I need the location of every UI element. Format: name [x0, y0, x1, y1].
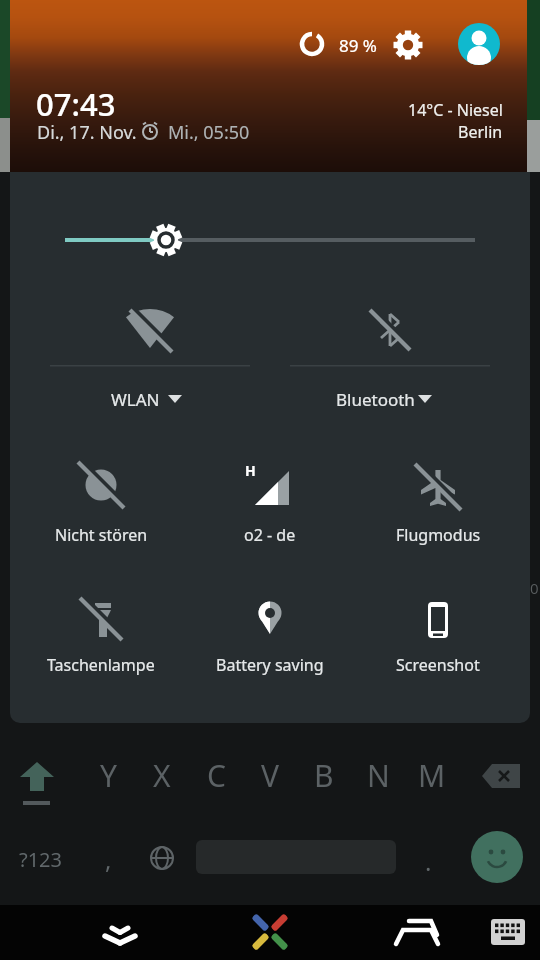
staticText: o2 - de	[244, 524, 296, 546]
button[interactable]	[200, 572, 350, 692]
button[interactable]: .	[416, 844, 440, 878]
button[interactable]	[280, 292, 500, 422]
button[interactable]	[14, 758, 62, 810]
button[interactable]	[457, 22, 501, 66]
staticText: Bluetooth	[336, 388, 415, 411]
staticText: X	[153, 755, 171, 796]
staticText: Screenshot	[396, 654, 480, 676]
staticText: Mi., 05:50	[168, 120, 250, 144]
button[interactable]	[368, 442, 518, 562]
button[interactable]: B	[302, 753, 346, 797]
button[interactable]: X	[140, 753, 184, 797]
button[interactable]: N	[356, 753, 400, 797]
button[interactable]	[244, 906, 296, 958]
staticText: .	[425, 845, 432, 878]
button[interactable]	[200, 442, 350, 562]
button[interactable]	[30, 442, 180, 562]
staticText: N	[367, 755, 390, 796]
button[interactable]	[10, 172, 530, 312]
staticText: C	[207, 755, 226, 796]
button[interactable]	[491, 919, 525, 945]
button[interactable]	[478, 758, 526, 794]
staticText: WLAN	[111, 388, 160, 411]
button[interactable]	[390, 27, 426, 63]
staticText: 07:43	[36, 83, 116, 121]
staticText: B	[314, 755, 334, 796]
staticText: Berlin	[458, 121, 503, 143]
button[interactable]	[470, 830, 524, 884]
staticText: H	[245, 461, 256, 480]
staticText: Flugmodus	[396, 524, 481, 546]
staticText: Y	[100, 755, 117, 796]
staticText: Di., 17. Nov.	[37, 120, 137, 144]
button[interactable]	[30, 572, 180, 692]
staticText: M	[418, 755, 446, 796]
button[interactable]	[96, 912, 144, 952]
staticText: Nicht stören	[55, 524, 148, 546]
staticText: V	[261, 755, 279, 796]
staticText: ?123	[19, 846, 62, 872]
staticText: 89 %	[339, 34, 377, 56]
button[interactable]: C	[194, 753, 238, 797]
button[interactable]: V	[248, 753, 292, 797]
button[interactable]: Y	[86, 753, 130, 797]
button[interactable]	[40, 292, 260, 422]
staticText: Taschenlampe	[47, 654, 155, 676]
staticText: 0	[530, 578, 539, 598]
button[interactable]	[148, 844, 176, 872]
staticText: Battery saving	[216, 654, 324, 676]
staticText: ,	[105, 843, 112, 876]
button[interactable]: M	[410, 753, 454, 797]
button[interactable]	[392, 906, 444, 958]
staticText: 14°C - Niesel	[408, 99, 503, 121]
button[interactable]: ?123	[12, 846, 68, 872]
button[interactable]: ,	[96, 842, 120, 876]
button[interactable]	[368, 572, 518, 692]
